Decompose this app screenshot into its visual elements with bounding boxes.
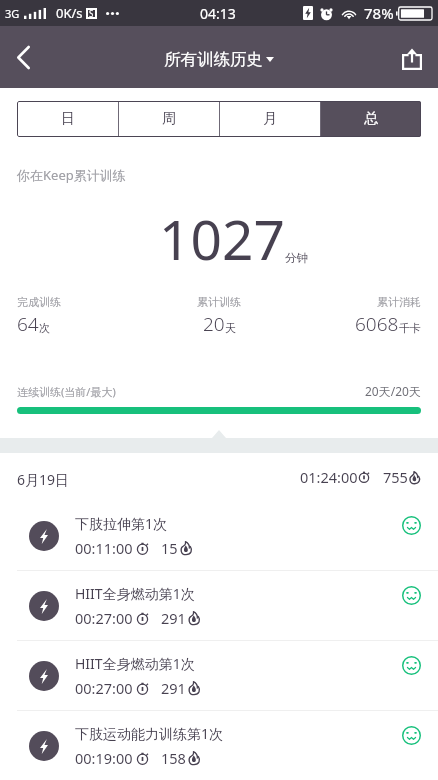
staticText: 78% bbox=[364, 3, 394, 23]
staticText: 00:11:00 bbox=[75, 538, 133, 558]
staticText: 00:27:00 bbox=[75, 608, 133, 628]
staticText: 1027 bbox=[159, 201, 285, 271]
staticText: 01:24:00 bbox=[300, 467, 358, 487]
staticText: 千卡 bbox=[399, 321, 421, 335]
button[interactable]: Back bbox=[1, 35, 45, 79]
button[interactable]: HIIT全身燃动第1次 bbox=[0, 571, 438, 641]
staticText: 00:19:00 bbox=[75, 748, 133, 768]
staticText: 158 bbox=[161, 748, 186, 768]
staticText: 日 bbox=[61, 110, 75, 128]
staticText: 分钟 bbox=[285, 251, 308, 265]
staticText: 天 bbox=[225, 321, 236, 335]
staticText: 你在Keep累计训练 bbox=[17, 166, 126, 184]
staticText: 周 bbox=[162, 110, 176, 128]
staticText: 次 bbox=[39, 321, 50, 335]
button[interactable]: 所有训练历史 bbox=[160, 43, 278, 72]
staticText: 月 bbox=[263, 110, 277, 128]
staticText: S bbox=[89, 8, 94, 19]
staticText: 6068 bbox=[355, 311, 399, 337]
staticText: 累计消耗 bbox=[377, 295, 421, 309]
button[interactable]: 下肢运动能力训练第1次 bbox=[0, 711, 438, 780]
staticText: 15 bbox=[161, 538, 178, 558]
button[interactable]: Share bbox=[390, 35, 434, 79]
staticText: 20天/20天 bbox=[365, 383, 421, 399]
staticText: 连续训练(当前/最大) bbox=[17, 384, 116, 399]
staticText: 累计训练 bbox=[197, 295, 241, 309]
staticText: HIIT全身燃动第1次 bbox=[75, 654, 195, 673]
button[interactable]: 周 bbox=[119, 101, 219, 137]
button[interactable]: 月 bbox=[220, 101, 320, 137]
button[interactable]: 下肢拉伸第1次 bbox=[0, 501, 438, 571]
staticText: 6月19日 bbox=[17, 470, 70, 489]
staticText: 00:27:00 bbox=[75, 678, 133, 698]
button[interactable]: HIIT全身燃动第1次 bbox=[0, 641, 438, 711]
staticText: 755 bbox=[383, 467, 408, 487]
button[interactable]: 总 bbox=[321, 101, 421, 137]
staticText: 下肢拉伸第1次 bbox=[75, 514, 168, 533]
staticText: 下肢运动能力训练第1次 bbox=[75, 724, 224, 743]
staticText: 0K/s bbox=[56, 4, 83, 22]
staticText: 291 bbox=[161, 678, 186, 698]
staticText: 所有训练历史 bbox=[164, 49, 263, 70]
staticText: 完成训练 bbox=[17, 295, 61, 309]
staticText: 64 bbox=[17, 311, 39, 337]
staticText: 291 bbox=[161, 608, 186, 628]
staticText: 20 bbox=[203, 311, 225, 337]
staticText: 3G bbox=[5, 6, 20, 21]
staticText: 04:13 bbox=[200, 4, 236, 23]
staticText: HIIT全身燃动第1次 bbox=[75, 584, 195, 603]
staticText: 总 bbox=[364, 110, 378, 128]
button[interactable]: 日 bbox=[17, 101, 118, 137]
